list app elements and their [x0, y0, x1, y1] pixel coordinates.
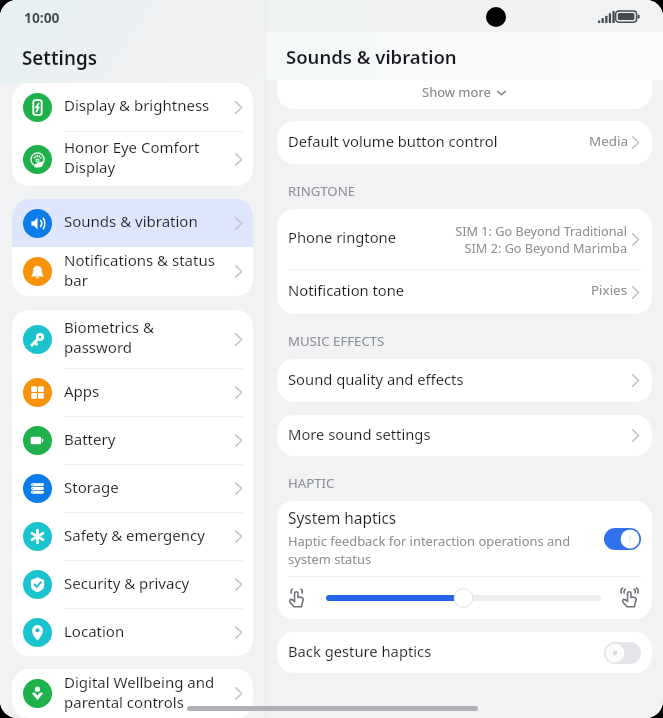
staticText: Sounds & vibration: [64, 211, 228, 231]
button[interactable]: Off: [604, 642, 641, 664]
staticText: Digital Wellbeing and parental controls: [64, 672, 228, 712]
staticText: Pixies: [591, 281, 628, 299]
button[interactable]: Location: [12, 609, 253, 656]
staticText: Back gesture haptics: [288, 641, 604, 661]
button[interactable]: Notifications & status bar: [12, 247, 253, 296]
button[interactable]: More sound settings: [277, 415, 652, 456]
button[interactable]: Phone ringtone: [277, 209, 652, 269]
button[interactable]: System haptics: [277, 501, 652, 576]
staticText: Sounds & vibration: [286, 44, 457, 69]
staticText: Notification tone: [288, 280, 405, 300]
staticText: Security & privacy: [64, 573, 228, 593]
staticText: Apps: [64, 381, 228, 401]
button[interactable]: Sounds & vibration: [12, 199, 253, 247]
staticText: SIM 2: Go Beyond Marimba: [464, 239, 627, 256]
staticText: Notifications & status bar: [64, 250, 228, 290]
staticText: SIM 1: Go Beyond Traditional: [455, 222, 627, 239]
staticText: Storage: [64, 477, 228, 497]
button[interactable]: Sound quality and effects: [277, 359, 652, 402]
staticText: Battery: [64, 429, 228, 449]
staticText: Settings: [22, 45, 97, 71]
button[interactable]: Honor Eye Comfort Display: [12, 132, 253, 186]
button[interactable]: Safety & emergency: [12, 513, 253, 560]
button[interactable]: Storage: [12, 465, 253, 512]
staticText: 10:00: [24, 8, 60, 27]
button[interactable]: Show more: [277, 80, 652, 109]
staticText: Display & brightness: [64, 95, 228, 115]
staticText: RINGTONE: [288, 182, 356, 200]
button[interactable]: On: [604, 528, 641, 550]
staticText: Haptic feedback for interaction operatio…: [288, 532, 571, 568]
button[interactable]: Digital Wellbeing and parental controls: [12, 669, 253, 718]
button[interactable]: Default volume button control: [277, 121, 652, 164]
staticText: Honor Eye Comfort Display: [64, 137, 228, 177]
staticText: System haptics: [288, 508, 397, 529]
staticText: MUSIC EFFECTS: [288, 332, 385, 350]
button[interactable]: Security & privacy: [12, 561, 253, 608]
staticText: More sound settings: [288, 424, 431, 444]
button[interactable]: Back gesture haptics: [277, 632, 652, 673]
staticText: Location: [64, 621, 228, 641]
button[interactable]: Display & brightness: [12, 83, 253, 131]
staticText: HAPTIC: [288, 474, 335, 492]
staticText: Sound quality and effects: [288, 369, 464, 389]
button[interactable]: Apps: [12, 369, 253, 416]
staticText: Show more: [422, 83, 491, 101]
staticText: Media: [589, 132, 628, 150]
button[interactable]: Notification tone: [277, 270, 652, 314]
staticText: Phone ringtone: [288, 227, 396, 247]
staticText: Default volume button control: [288, 131, 498, 151]
button[interactable]: Battery: [12, 417, 253, 464]
staticText: Safety & emergency: [64, 525, 228, 545]
button[interactable]: Biometrics & password: [12, 310, 253, 368]
staticText: Biometrics & password: [64, 317, 228, 357]
